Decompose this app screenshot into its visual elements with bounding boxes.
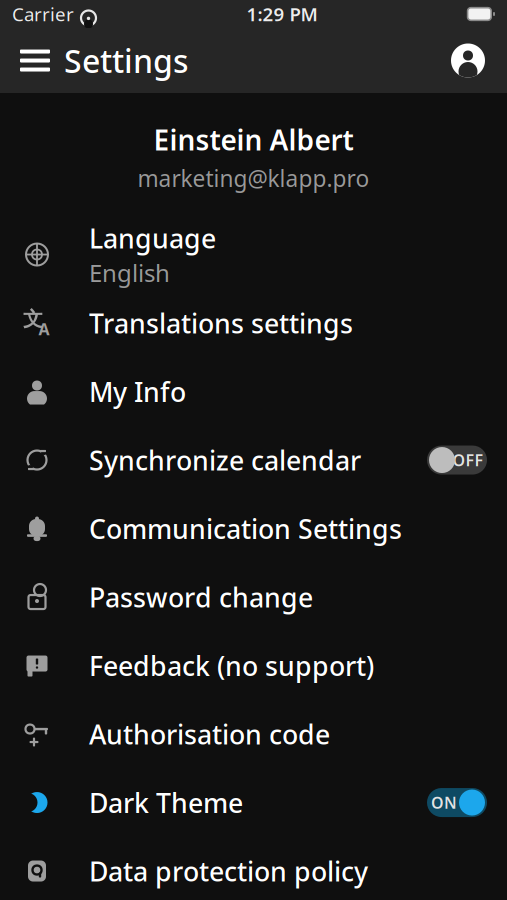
button[interactable]: Language [0, 220, 507, 289]
staticText: marketing@klapp.pro [137, 163, 369, 193]
staticText: My Info [89, 374, 186, 409]
button[interactable]: Data protection policy [0, 837, 507, 900]
staticText: English [89, 257, 170, 289]
staticText: Authorisation code [89, 716, 330, 752]
staticText: Communication Settings [89, 511, 402, 546]
staticText: Synchronize calendar [89, 442, 361, 478]
staticText: Password change [89, 579, 313, 615]
staticText: Settings [64, 39, 189, 82]
staticText: Translations settings [89, 305, 353, 341]
staticText: Dark Theme [89, 785, 243, 820]
staticText: 1:29 PM [246, 2, 317, 26]
staticText: OFF [452, 449, 483, 471]
staticText: ON [431, 792, 457, 813]
button[interactable]: Settings [64, 28, 189, 93]
staticText: Einstein Albert [153, 121, 353, 158]
button[interactable]: 文 [0, 289, 507, 357]
staticText: Carrier [12, 2, 74, 26]
button[interactable]: My Info [0, 357, 507, 426]
staticText: A [38, 318, 49, 340]
button[interactable]: Authorisation code [0, 700, 507, 768]
button[interactable]: Password change [0, 563, 507, 631]
staticText: 文 [23, 307, 43, 331]
button[interactable]: Communication Settings [0, 494, 507, 563]
button[interactable]: Feedback (no support) [0, 631, 507, 700]
staticText: Feedback (no support) [89, 648, 374, 683]
staticText: Language [89, 220, 216, 256]
button[interactable]: Menu [0, 28, 64, 93]
staticText: Data protection policy [89, 853, 368, 889]
button[interactable]: Synchronize calendar [0, 426, 507, 494]
button[interactable]: Dark Theme [0, 768, 507, 837]
button[interactable]: Account [451, 28, 507, 93]
